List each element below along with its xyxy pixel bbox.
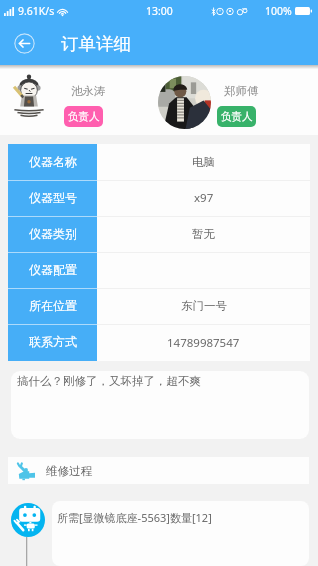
button[interactable]: 仪器名称	[8, 144, 310, 180]
staticText: 负责人	[221, 110, 253, 123]
button[interactable]: 仪器配置	[8, 252, 310, 288]
staticText: 所在位置	[29, 298, 77, 313]
button[interactable]: 联系方式	[8, 324, 310, 361]
staticText: 仪器型号	[29, 190, 77, 205]
staticText: 订单详细	[61, 33, 131, 55]
staticText: x97	[194, 190, 214, 206]
staticText: 池永涛	[71, 84, 106, 98]
staticText: 东门一号	[181, 299, 227, 313]
staticText: 所需[显微镜底座-5563]数量[12]	[57, 510, 212, 525]
button[interactable]: 池永涛	[0, 65, 150, 135]
button[interactable]: 所需[显微镜底座-5563]数量[12]	[52, 501, 309, 566]
button[interactable]: 郑师傅	[150, 65, 203, 135]
staticText: 暂无	[192, 227, 215, 241]
button[interactable]: 维修过程	[8, 457, 309, 484]
button[interactable]: 负责人	[217, 106, 256, 127]
staticText: 电脑	[192, 155, 215, 169]
staticText: 13:00	[146, 4, 173, 18]
staticText: 维修过程	[46, 464, 92, 478]
button[interactable]: 负责人	[64, 106, 103, 127]
staticText: 9.61K/s	[18, 4, 55, 18]
button[interactable]: 仪器型号	[8, 180, 310, 216]
staticText: 负责人	[68, 110, 100, 123]
staticText: 郑师傅	[224, 84, 259, 98]
button[interactable]: 搞什么？刚修了，又坏掉了，超不爽	[11, 371, 309, 439]
staticText: 14789987547	[167, 335, 240, 351]
button[interactable]: 所在位置	[8, 288, 310, 324]
staticText: 仪器类别	[29, 226, 77, 241]
staticText: 仪器名称	[29, 154, 77, 169]
button[interactable]: Back	[14, 33, 35, 54]
staticText: 100%	[265, 4, 292, 18]
button[interactable]: 仪器类别	[8, 216, 310, 252]
staticText: 联系方式	[29, 334, 77, 349]
staticText: 仪器配置	[29, 262, 77, 277]
staticText: 搞什么？刚修了，又坏掉了，超不爽	[17, 374, 201, 388]
